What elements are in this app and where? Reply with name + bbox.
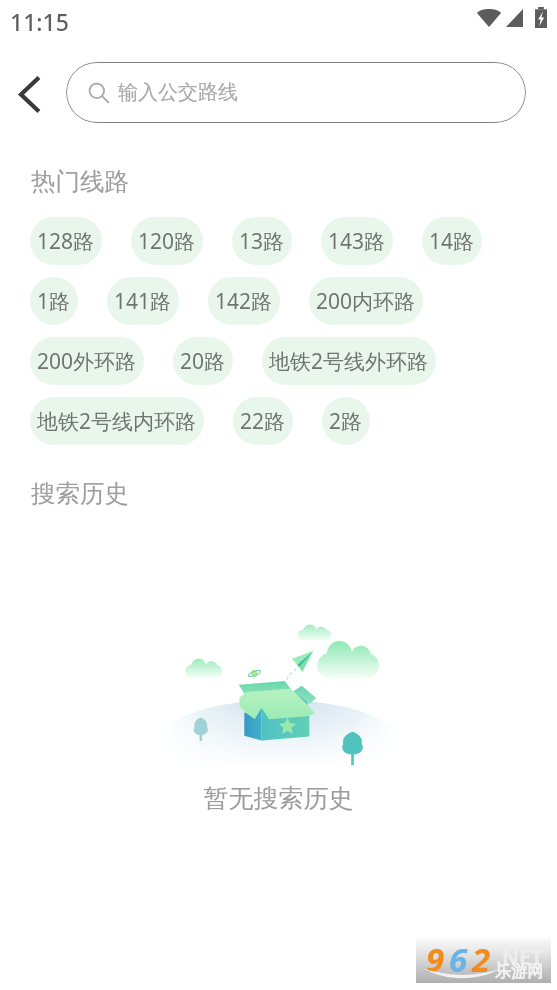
button[interactable]: 142路 — [208, 277, 280, 325]
button[interactable]: 120路 — [131, 217, 203, 265]
button[interactable]: 13路 — [232, 217, 292, 265]
staticText: 14路 — [429, 227, 475, 256]
button[interactable]: Back — [12, 75, 46, 113]
button[interactable]: 地铁2号线外环路 — [262, 337, 436, 385]
staticText: 地铁2号线外环路 — [269, 347, 429, 376]
staticText: 地铁2号线内环路 — [37, 407, 197, 436]
button[interactable]: 20路 — [173, 337, 233, 385]
button[interactable]: 2路 — [322, 397, 370, 445]
button[interactable]: 200内环路 — [309, 277, 423, 325]
staticText: 9 — [426, 937, 449, 982]
button[interactable]: 200外环路 — [30, 337, 144, 385]
staticText: 搜索历史 — [31, 478, 129, 509]
staticText: 2路 — [329, 407, 363, 436]
staticText: 22路 — [240, 407, 286, 436]
staticText: 200外环路 — [37, 347, 137, 376]
staticText: 142路 — [215, 287, 273, 316]
button[interactable]: 143路 — [321, 217, 393, 265]
staticText: 13路 — [239, 227, 285, 256]
staticText: 暂无搜索历史 — [0, 783, 557, 814]
staticText: 输入公交路线 — [118, 80, 238, 105]
staticText: 128路 — [37, 227, 95, 256]
staticText: 热门线路 — [31, 166, 129, 197]
button[interactable]: 输入公交路线 — [66, 62, 526, 123]
button[interactable]: 地铁2号线内环路 — [30, 397, 204, 445]
button[interactable]: 14路 — [422, 217, 482, 265]
button[interactable]: 1路 — [30, 277, 78, 325]
staticText: .NET — [496, 943, 543, 972]
staticText: 2 — [472, 937, 495, 982]
staticText: 200内环路 — [316, 287, 416, 316]
staticText: 20路 — [180, 347, 226, 376]
staticText: 143路 — [328, 227, 386, 256]
staticText: 1路 — [37, 287, 71, 316]
staticText: 120路 — [138, 227, 196, 256]
staticText: 11:15 — [10, 6, 69, 37]
button[interactable]: 141路 — [107, 277, 179, 325]
button[interactable]: 22路 — [233, 397, 293, 445]
staticText: 141路 — [114, 287, 172, 316]
staticText: 6 — [449, 937, 472, 982]
button[interactable]: 128路 — [30, 217, 102, 265]
staticText: 乐游网 — [495, 962, 543, 982]
